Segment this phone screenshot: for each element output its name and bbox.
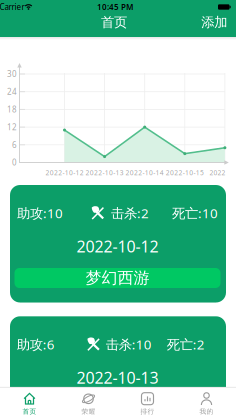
staticText: 2022 [209,168,225,177]
button[interactable]: 梦幻西游 [14,399,220,419]
staticText: 12 [7,122,17,132]
staticText: 2022-10-13 [85,168,124,177]
button[interactable]: 添加 [197,11,231,33]
staticText: 助攻:10 [17,204,63,222]
staticText: 18 [7,104,17,115]
staticText: 2022-10-12 [45,168,84,177]
button[interactable]: 我的 [177,388,236,419]
button[interactable]: 梦幻西游 [14,268,220,288]
button[interactable]: 排行 [118,388,177,419]
staticText: 荣耀 [81,407,95,416]
staticText: 0 [12,157,17,168]
staticText: 首页 [101,14,127,31]
button[interactable]: 荣耀 [59,388,118,419]
staticText: 击杀:2 [111,204,149,222]
staticText: 击杀:10 [106,335,152,353]
staticText: 2022-10-15 [166,168,204,177]
staticText: 我的 [199,407,213,416]
staticText: 24 [7,86,17,97]
staticText: 梦幻西游 [85,268,149,288]
staticText: 6 [12,139,17,150]
staticText: 2022-10-12 [76,236,158,257]
staticText: 2022-10-14 [126,168,164,177]
staticText: 排行 [140,407,154,416]
staticText: Carrier [0,2,24,12]
staticText: 首页 [22,407,36,416]
staticText: 死亡:10 [172,204,218,222]
button[interactable]: 首页 [0,388,59,419]
staticText: 梦幻西游 [85,399,149,419]
staticText: 30 [7,69,17,79]
staticText: 死亡:2 [167,335,205,353]
staticText: 助攻:6 [17,335,55,353]
staticText: 2022-10-13 [76,367,158,388]
staticText: 添加 [201,14,227,31]
staticText: 10:45 PM [97,1,133,12]
